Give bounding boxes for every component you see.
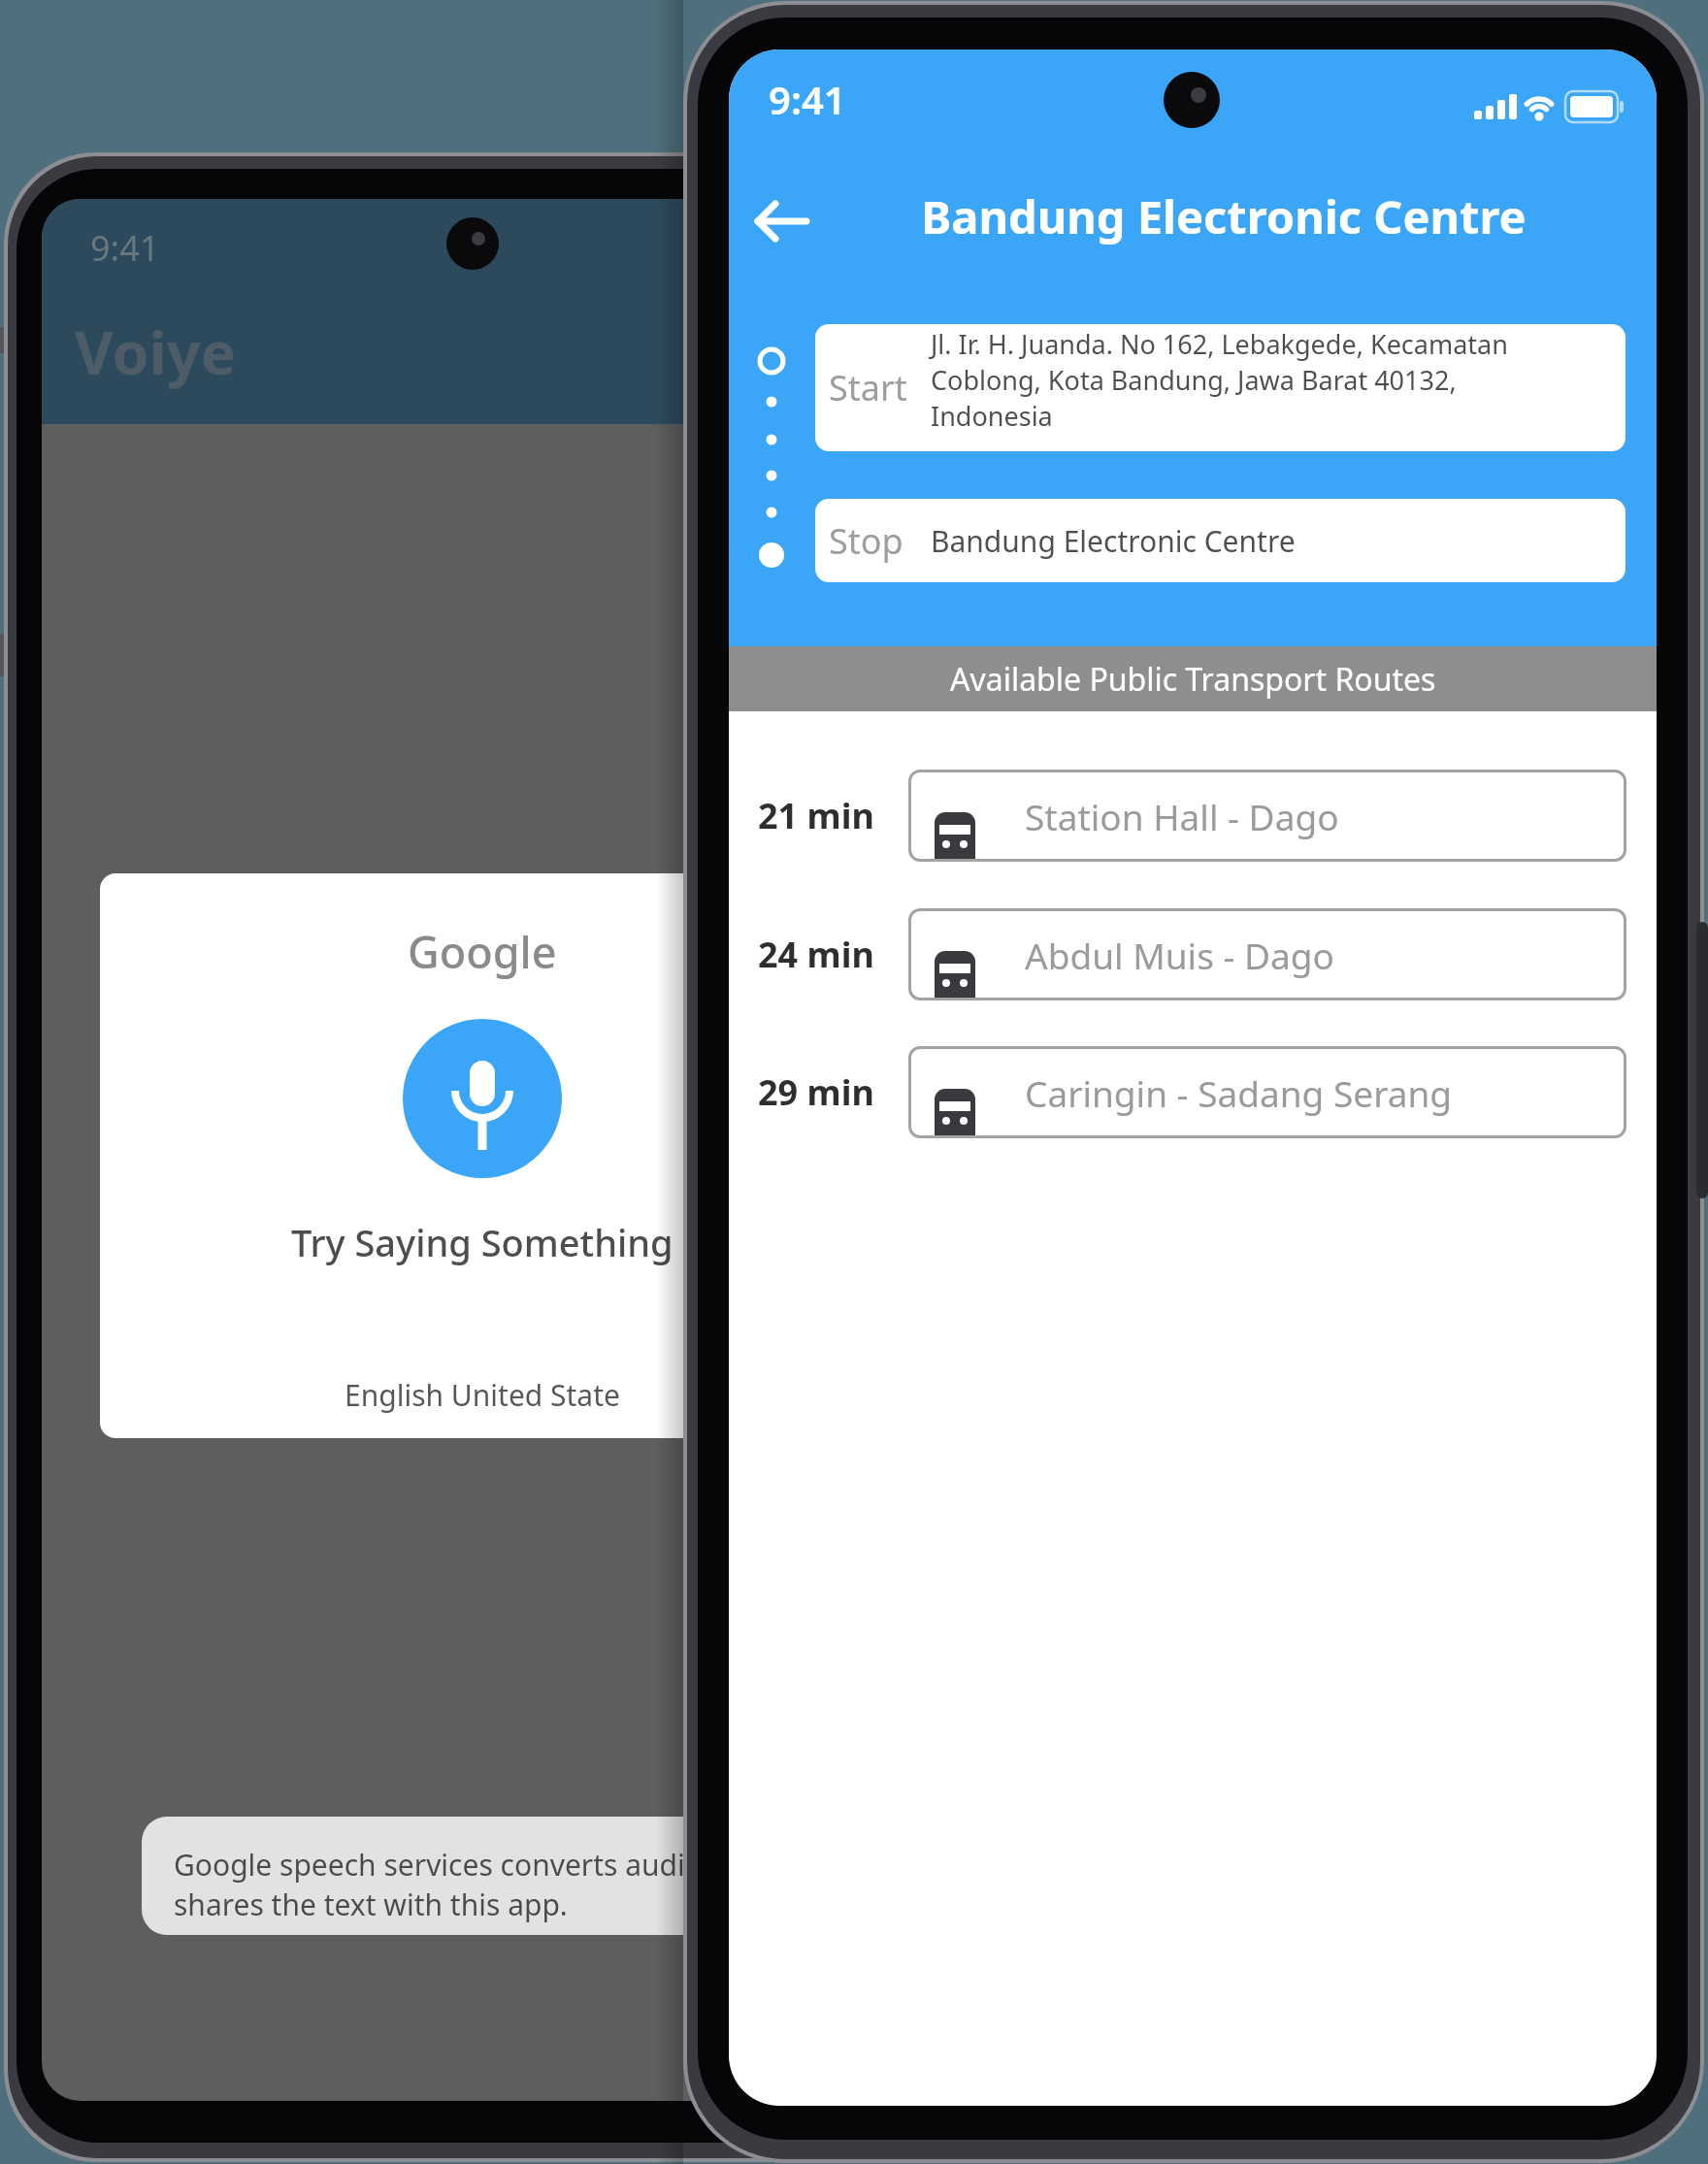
staticText: Stop [829,517,903,565]
staticText: Voiye [75,311,237,392]
staticText: Bandung Electronic Centre [921,185,1527,247]
button[interactable] [403,1019,562,1178]
staticText: Google speech services converts audio to… [174,1845,823,1885]
button[interactable]: Caringin - Sadang Serang [908,1046,1626,1138]
staticText: Caringin - Sadang Serang [1025,1068,1453,1117]
staticText: shares the text with this app. [174,1885,568,1924]
staticText: English United State [345,1375,620,1415]
button[interactable] [756,197,806,246]
staticText: Available Public Transport Routes [950,658,1436,701]
button[interactable]: Abdul Muis - Dago [908,908,1626,1000]
staticText: Jl. Ir. H. Juanda. No 162, Lebakgede, Ke… [931,326,1508,362]
staticText: Station Hall - Dago [1025,792,1339,840]
staticText: 21 min [758,792,874,839]
staticText: 9:41 [769,73,846,125]
staticText: Start [829,364,907,411]
button[interactable]: Station Hall - Dago [908,770,1626,862]
staticText: Indonesia [931,398,1053,434]
button[interactable]: Google [100,873,865,1438]
button[interactable]: Start [815,324,1626,451]
button[interactable]: Stop [815,499,1626,582]
staticText: Abdul Muis - Dago [1025,931,1334,979]
staticText: Google [408,922,557,981]
staticText: 24 min [758,931,874,978]
staticText: Try Saying Something [291,1217,673,1267]
staticText: Coblong, Kota Bandung, Jawa Barat 40132, [931,362,1457,398]
staticText: Bandung Electronic Centre [931,521,1296,561]
staticText: 29 min [758,1068,874,1116]
staticText: 9:41 [90,224,160,272]
